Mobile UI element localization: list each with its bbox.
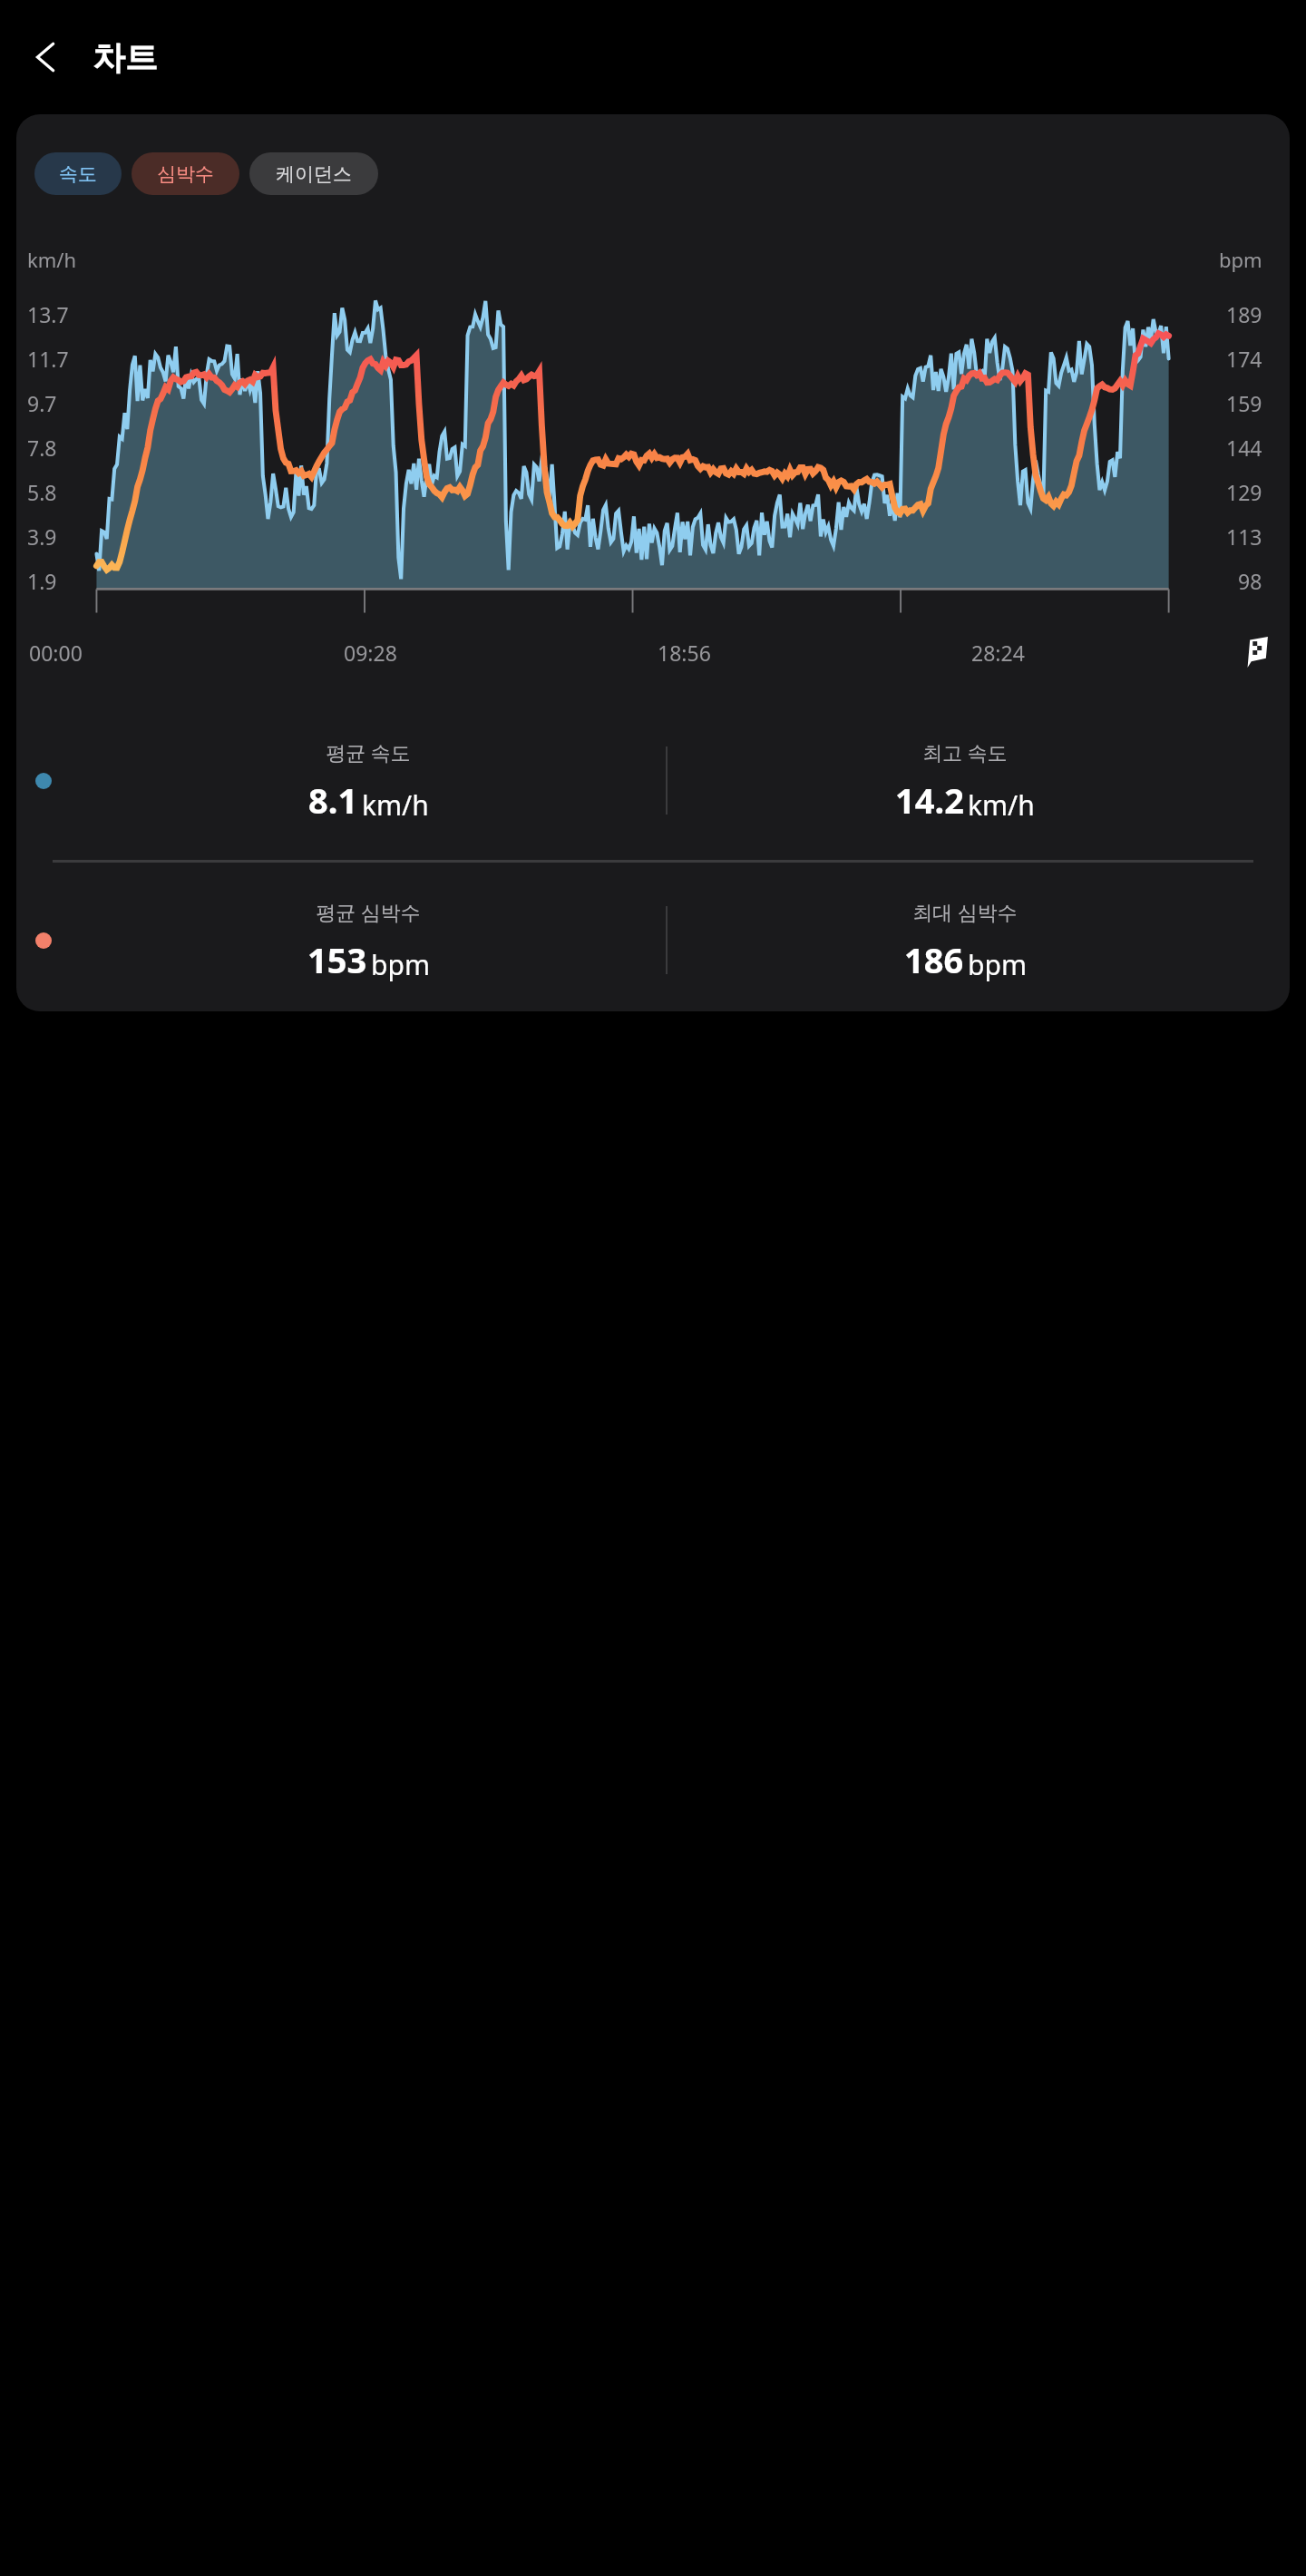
staticText: 차트 [93, 37, 158, 78]
staticText: 5.8 [27, 478, 57, 506]
staticText: 113 [1226, 522, 1262, 551]
staticText: 최대 심박수 [912, 898, 1018, 925]
button[interactable]: 케이던스 [249, 152, 378, 195]
staticText: 평균 심박수 [316, 898, 421, 925]
staticText: 186 [904, 936, 964, 983]
staticText: 평균 속도 [326, 738, 411, 766]
staticText: 3.9 [27, 522, 57, 551]
staticText: 1.9 [27, 567, 57, 595]
staticText: 7.8 [27, 434, 57, 462]
staticText: bpm [1219, 246, 1262, 273]
button[interactable]: 속도 [34, 152, 122, 195]
staticText: km/h [362, 786, 429, 824]
staticText: 최고 속도 [922, 738, 1008, 766]
staticText: bpm [968, 946, 1027, 983]
staticText: 174 [1226, 345, 1262, 373]
staticText: 159 [1226, 389, 1262, 417]
staticText: 189 [1226, 300, 1262, 328]
staticText: 18:56 [658, 639, 711, 667]
staticText: 00:00 [29, 639, 83, 667]
button[interactable]: 최고 속도 [668, 738, 1262, 824]
staticText: 09:28 [344, 639, 397, 667]
staticText: 153 [307, 936, 367, 983]
staticText: 144 [1226, 434, 1262, 462]
staticText: km/h [968, 786, 1035, 824]
button[interactable]: 심박수 [132, 152, 239, 195]
staticText: 14.2 [895, 776, 964, 824]
staticText: bpm [371, 946, 430, 983]
button[interactable]: Back [20, 31, 73, 83]
staticText: 심박수 [157, 162, 214, 186]
staticText: 98 [1238, 567, 1262, 595]
staticText: 케이던스 [276, 162, 352, 186]
button[interactable]: 최대 심박수 [668, 898, 1262, 983]
staticText: 11.7 [27, 345, 69, 373]
staticText: 8.1 [308, 776, 358, 824]
button[interactable]: 평균 속도 [71, 738, 666, 824]
staticText: 129 [1226, 478, 1262, 506]
staticText: km/h [27, 246, 77, 273]
staticText: 9.7 [27, 389, 57, 417]
staticText: 속도 [59, 162, 97, 186]
staticText: 28:24 [971, 639, 1025, 667]
staticText: 13.7 [27, 300, 69, 328]
button[interactable]: 평균 심박수 [71, 898, 666, 983]
